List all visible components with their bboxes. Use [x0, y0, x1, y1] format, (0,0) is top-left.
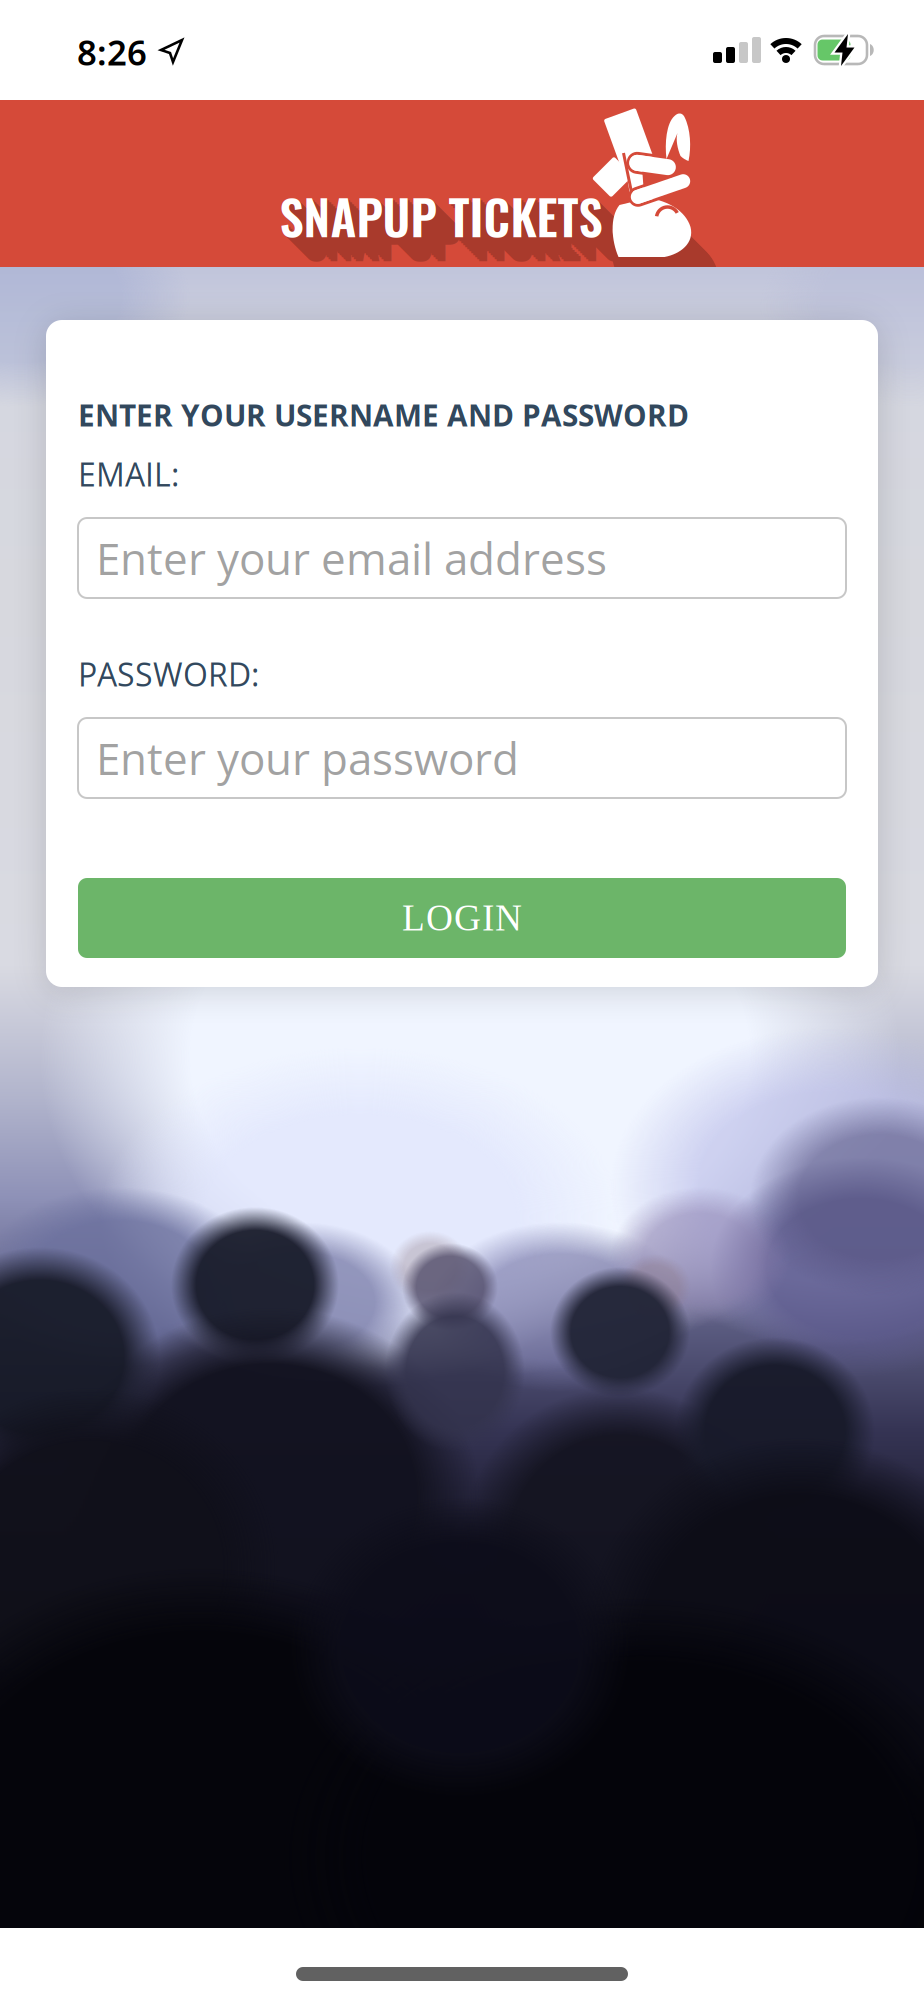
button[interactable]: Enter your password: [78, 718, 846, 798]
staticText: SNAPUP TICKETS: [295, 196, 618, 267]
staticText: 8:26: [77, 29, 147, 75]
staticText: SNAPUP TICKETS: [279, 180, 602, 251]
staticText: SNAPUP TICKETS: [289, 190, 612, 261]
staticText: SNAPUP TICKETS: [303, 204, 626, 275]
staticText: SNAPUP TICKETS: [281, 182, 604, 253]
staticText: LOGIN: [402, 897, 522, 939]
button[interactable]: LOGIN: [78, 878, 846, 958]
staticText: SNAPUP TICKETS: [285, 186, 608, 257]
staticText: SNAPUP TICKETS: [301, 202, 624, 273]
staticText: SNAPUP TICKETS: [287, 188, 610, 259]
button[interactable]: Home: [296, 1967, 628, 1981]
button[interactable]: Enter your email address: [78, 518, 846, 598]
staticText: PASSWORD:: [78, 652, 259, 696]
staticText: SNAPUP TICKETS: [293, 194, 616, 265]
staticText: SNAPUP TICKETS: [299, 200, 622, 271]
staticText: SNAPUP TICKETS: [283, 184, 606, 255]
staticText: ENTER YOUR USERNAME AND PASSWORD: [78, 395, 689, 435]
staticText: SNAPUP TICKETS: [297, 198, 620, 269]
staticText: EMAIL:: [78, 452, 179, 496]
staticText: Enter your email address: [96, 528, 607, 588]
staticText: SNAPUP TICKETS: [291, 192, 614, 263]
staticText: Enter your password: [96, 728, 519, 788]
